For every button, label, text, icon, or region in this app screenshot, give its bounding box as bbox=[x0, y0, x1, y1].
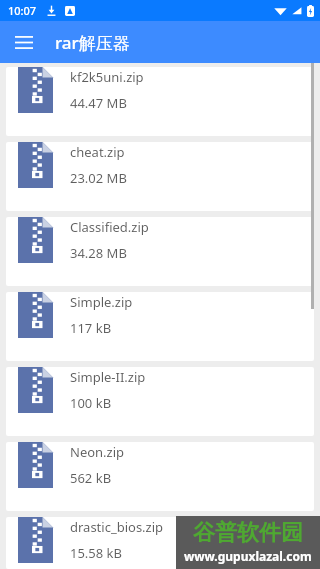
staticText: drastic_bios.zip bbox=[70, 518, 164, 536]
staticText: 117 kB bbox=[70, 319, 112, 337]
staticText: Simple.zip bbox=[70, 293, 133, 311]
staticText: cheat.zip bbox=[70, 143, 125, 161]
button[interactable]: Simple-II.zip bbox=[6, 367, 314, 436]
staticText: 谷普软件园 bbox=[193, 519, 303, 547]
staticText: www.gupuxlazal.com bbox=[184, 548, 312, 564]
button[interactable]: Classified.zip bbox=[6, 217, 314, 286]
staticText: 100 kB bbox=[70, 394, 112, 412]
button[interactable]: Open navigation drawer bbox=[7, 25, 41, 59]
button[interactable]: drastic_bios.zip bbox=[6, 517, 314, 569]
staticText: kf2k5uni.zip bbox=[70, 68, 144, 86]
staticText: 23.02 MB bbox=[70, 169, 127, 187]
staticText: Neon.zip bbox=[70, 443, 125, 461]
staticText: Simple-II.zip bbox=[70, 368, 146, 386]
button[interactable]: kf2k5uni.zip bbox=[6, 67, 314, 136]
button[interactable]: Neon.zip bbox=[6, 442, 314, 511]
staticText: rar解压器 bbox=[55, 31, 130, 54]
staticText: 44.47 MB bbox=[70, 94, 127, 112]
staticText: 15.58 kB bbox=[70, 544, 123, 562]
staticText: 10:07 bbox=[8, 3, 37, 18]
button[interactable]: cheat.zip bbox=[6, 142, 314, 211]
staticText: Classified.zip bbox=[70, 218, 149, 236]
button[interactable]: Simple.zip bbox=[6, 292, 314, 361]
staticText: 34.28 MB bbox=[70, 244, 127, 262]
staticText: 562 kB bbox=[70, 469, 112, 487]
